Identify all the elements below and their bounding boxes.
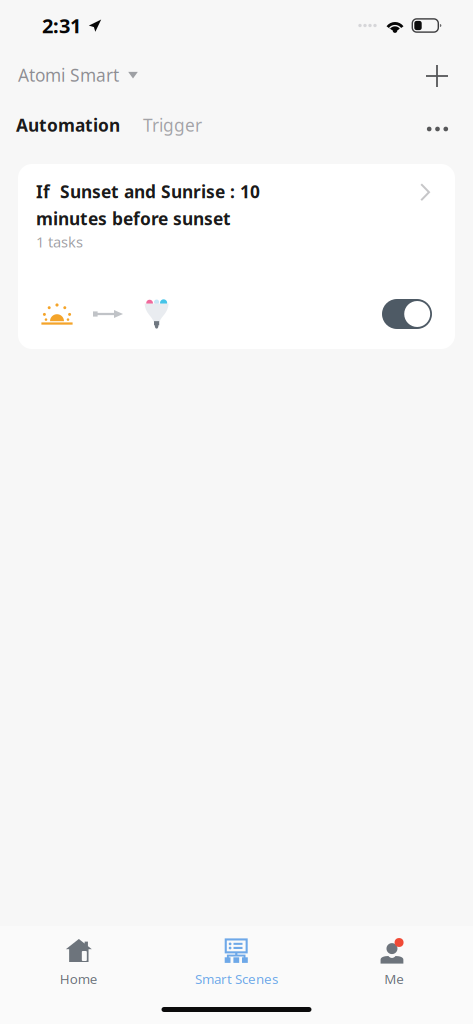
staticText: 2:31 [42,12,81,39]
staticText: minutes before sunset [36,207,231,230]
button[interactable]: Add device [418,55,456,95]
button[interactable]: Automation [16,105,120,144]
button[interactable]: Trigger [120,105,202,144]
button[interactable]: If Sunset and Sunrise : 10 [18,164,455,349]
staticText: Atomi Smart [18,63,119,86]
button[interactable]: Me [315,933,473,993]
button[interactable]: Home [0,933,158,993]
button[interactable]: Smart Scenes [158,933,315,993]
staticText: If Sunset and Sunrise : 10 [36,180,260,203]
button[interactable]: More options [419,110,456,139]
staticText: Trigger [143,113,202,136]
staticText: Automation [16,113,120,136]
staticText: Home [60,970,98,988]
staticText: 1 tasks [36,232,83,251]
staticText: Me [384,970,404,988]
button[interactable]: Atomi Smart [18,54,138,95]
button[interactable]: Automation enabled [382,299,432,329]
staticText: Smart Scenes [195,970,278,988]
